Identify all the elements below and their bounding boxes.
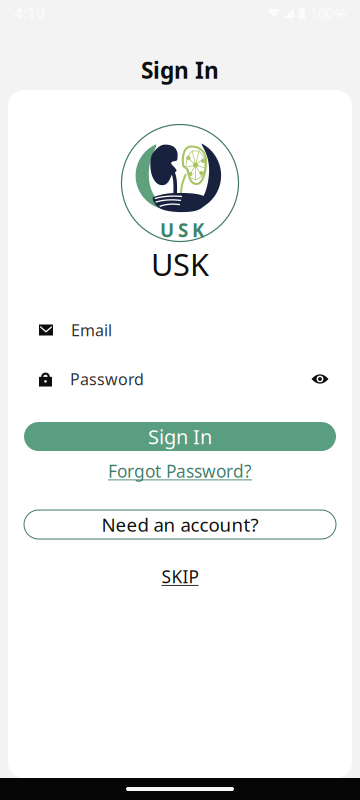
staticText: USK xyxy=(160,218,204,242)
staticText: Forgot Password? xyxy=(108,459,252,482)
button[interactable]: Forgot Password? xyxy=(0,462,360,480)
button[interactable]: Show password xyxy=(309,369,331,389)
staticText: Password xyxy=(70,368,144,390)
staticText: SKIP xyxy=(161,565,198,588)
staticText: Sign In xyxy=(148,423,212,450)
button[interactable]: SKIP xyxy=(0,568,360,585)
staticText: Need an account? xyxy=(101,512,258,537)
staticText: Sign In xyxy=(141,55,219,85)
staticText: USK xyxy=(151,244,209,284)
button[interactable]: Sign In xyxy=(24,422,336,451)
button[interactable]: Need an account? xyxy=(24,510,336,539)
staticText: Email xyxy=(71,319,112,341)
